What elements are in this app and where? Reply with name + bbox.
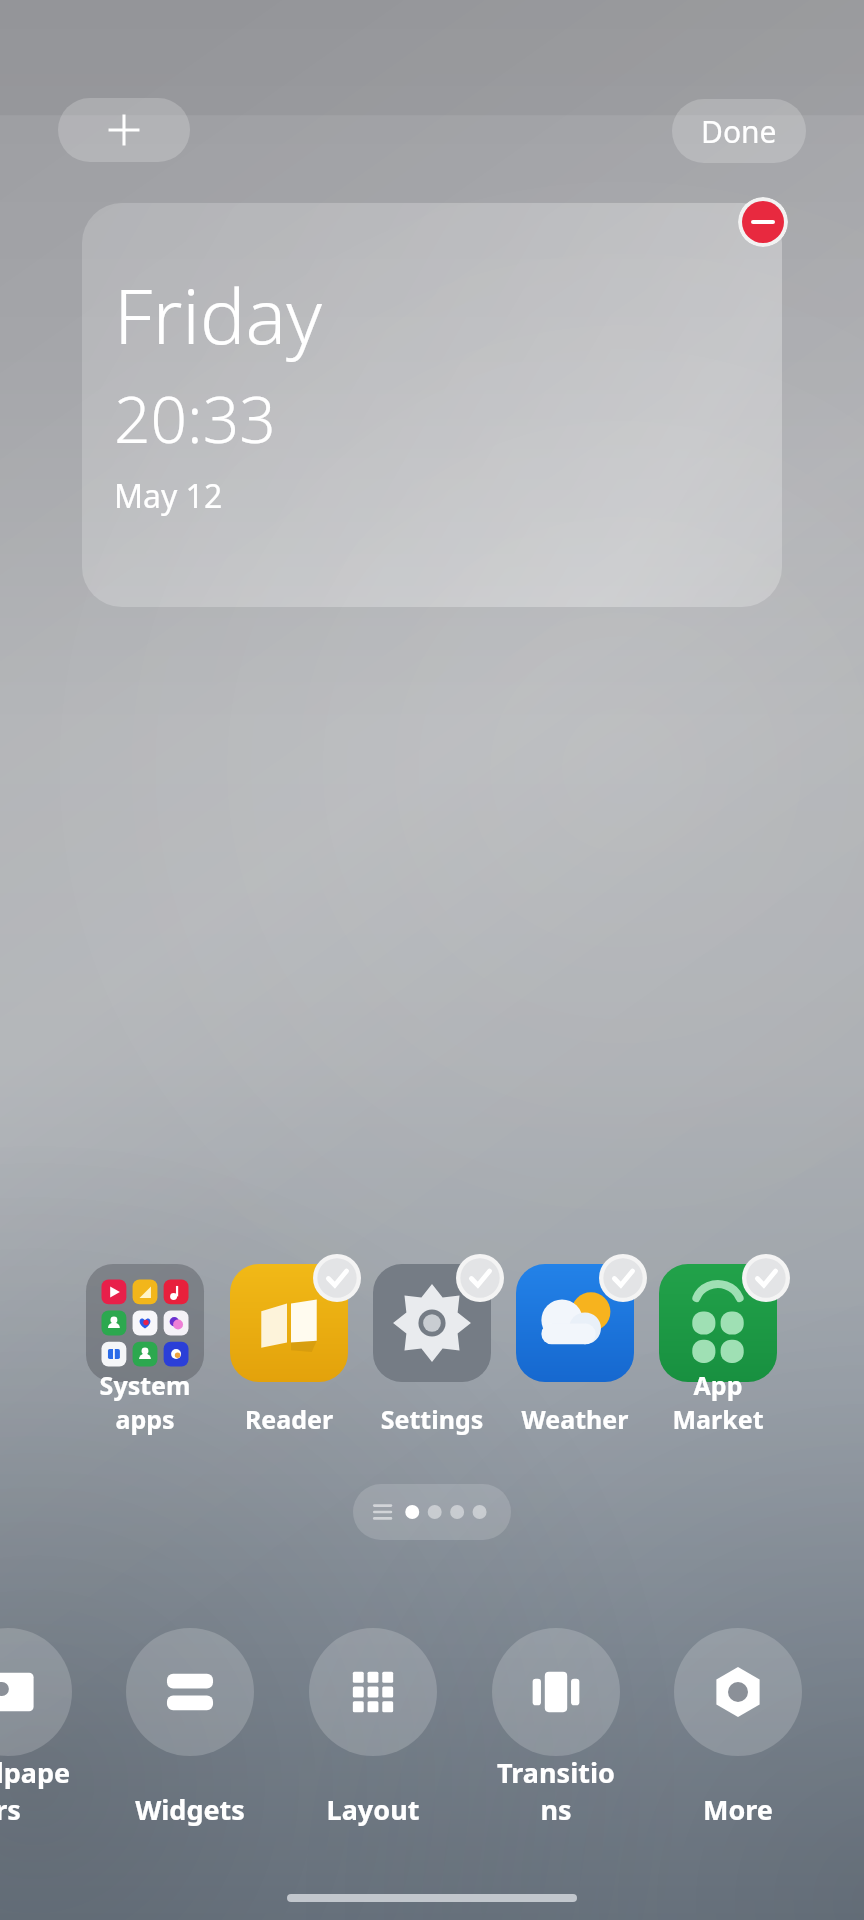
button[interactable]: Done — [672, 99, 806, 163]
button[interactable]: Layout — [309, 1628, 437, 1838]
staticText: Weather — [503, 1402, 647, 1436]
button[interactable]: Weather — [503, 1262, 647, 1442]
staticText: Transitions — [492, 1754, 620, 1828]
staticText: App Market — [646, 1368, 790, 1436]
staticText: System apps — [73, 1368, 217, 1436]
button[interactable]: System apps — [73, 1262, 217, 1442]
button[interactable]: Widgets — [126, 1628, 254, 1838]
staticText: May 12 — [114, 474, 223, 518]
button[interactable]: Transitions — [492, 1628, 620, 1838]
staticText: Wallpapers — [0, 1754, 72, 1828]
staticText: 20:33 — [114, 375, 276, 462]
staticText: Widgets — [126, 1791, 254, 1828]
button[interactable]: Page indicator — [353, 1484, 511, 1540]
button[interactable]: Friday — [82, 203, 782, 607]
staticText: Friday — [114, 263, 322, 367]
staticText: More — [674, 1791, 802, 1828]
button[interactable]: App Market — [646, 1262, 790, 1442]
button[interactable]: Add widget — [58, 98, 190, 162]
button[interactable]: Settings — [360, 1262, 504, 1442]
staticText: Layout — [309, 1791, 437, 1828]
staticText: Settings — [360, 1402, 504, 1436]
staticText: Done — [701, 111, 777, 152]
staticText: Reader — [217, 1402, 361, 1436]
button[interactable]: Remove widget — [738, 197, 788, 247]
button[interactable]: Reader — [217, 1262, 361, 1442]
button[interactable]: Wallpapers — [0, 1628, 72, 1838]
button[interactable]: More — [674, 1628, 802, 1838]
